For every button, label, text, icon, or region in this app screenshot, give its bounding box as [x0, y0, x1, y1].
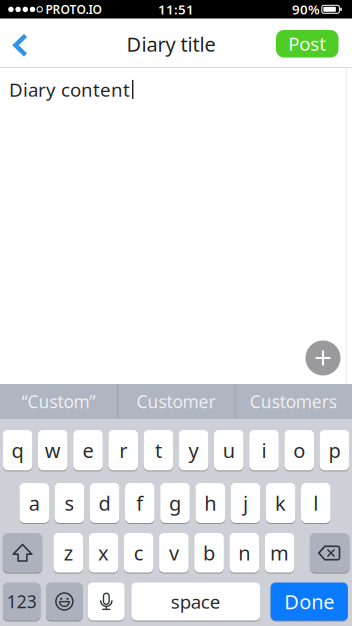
staticText: q: [12, 437, 24, 463]
staticText: 11:51: [158, 0, 194, 18]
staticText: Customer: [136, 390, 215, 413]
staticText: Post: [288, 31, 326, 56]
staticText: Diary title: [126, 31, 215, 57]
staticText: l: [313, 490, 318, 516]
staticText: m: [270, 539, 289, 566]
staticText: b: [203, 539, 215, 566]
staticText: g: [169, 490, 181, 516]
staticText: h: [204, 490, 216, 516]
staticText: e: [82, 437, 93, 463]
staticText: u: [223, 437, 235, 463]
staticText: k: [275, 490, 286, 516]
staticText: y: [189, 437, 199, 463]
staticText: w: [45, 437, 61, 463]
staticText: Diary content: [9, 77, 130, 102]
staticText: t: [155, 437, 162, 463]
staticText: x: [98, 539, 109, 566]
staticText: r: [119, 437, 127, 463]
staticText: j: [243, 490, 248, 516]
staticText: c: [134, 539, 144, 566]
staticText: v: [169, 539, 179, 566]
staticText: 123: [7, 590, 37, 613]
staticText: PROTO.IO: [45, 1, 101, 17]
staticText: n: [238, 539, 250, 566]
staticText: Customers: [250, 390, 337, 413]
staticText: z: [64, 539, 73, 566]
staticText: p: [328, 437, 340, 463]
staticText: Done: [284, 588, 334, 615]
staticText: o: [293, 437, 305, 463]
staticText: a: [29, 490, 40, 516]
staticText: space: [171, 589, 221, 614]
staticText: d: [99, 490, 111, 516]
staticText: i: [261, 437, 266, 463]
staticText: s: [64, 490, 74, 516]
staticText: f: [136, 490, 143, 516]
staticText: 90%: [292, 0, 320, 18]
staticText: “Custom”: [22, 390, 96, 413]
